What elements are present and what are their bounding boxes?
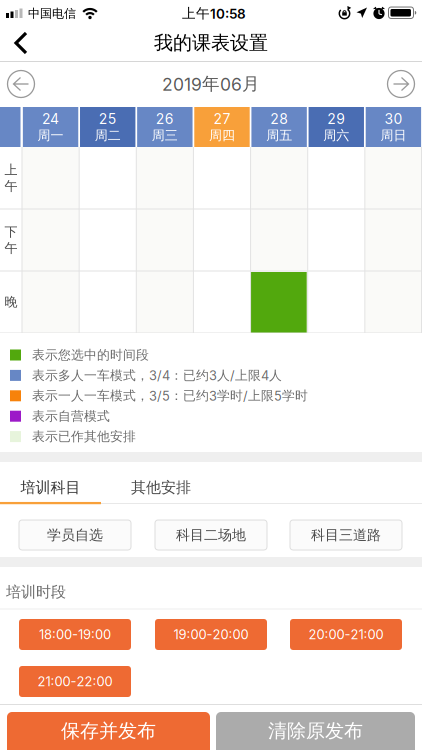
staticText: 18:00-19:00	[39, 627, 111, 642]
staticText: 28	[270, 110, 288, 127]
button[interactable]: 30	[366, 107, 421, 147]
staticText: 21:00-22:00	[37, 674, 112, 689]
button[interactable]: Previous month	[7, 70, 34, 97]
staticText: 27	[213, 110, 230, 127]
staticText: 上	[4, 162, 17, 178]
staticText: 表示多人一车模式，3/4：已约3人/上限4人	[32, 367, 282, 383]
button[interactable]: 18:00-19:00	[19, 619, 131, 650]
staticText: 培训科目	[20, 478, 80, 497]
staticText: 30	[384, 110, 402, 127]
staticText: 2019年06月	[162, 73, 260, 95]
staticText: 清除原发布	[268, 719, 363, 743]
staticText: 晚	[4, 294, 17, 310]
staticText: 科目三道路	[311, 526, 381, 544]
staticText: 周一	[38, 127, 64, 144]
staticText: 下	[4, 224, 17, 240]
staticText: 表示您选中的时间段	[32, 347, 149, 363]
staticText: 25	[99, 110, 117, 127]
staticText: 午	[4, 178, 17, 194]
staticText: 培训时段	[6, 583, 66, 601]
staticText: 中国电信	[28, 6, 76, 21]
staticText: 周二	[95, 127, 121, 144]
staticText: 保存并发布	[61, 719, 156, 743]
button[interactable]: Back	[13, 31, 28, 55]
staticText: 周日	[380, 127, 406, 144]
staticText: 19:00-20:00	[173, 627, 248, 642]
staticText: 午	[4, 240, 17, 256]
staticText: 上午10:58	[182, 5, 246, 22]
button[interactable]: 28	[251, 107, 307, 147]
button[interactable]: 25	[80, 107, 135, 147]
staticText: 26	[156, 110, 174, 127]
button[interactable]: 科目三道路	[290, 520, 402, 550]
button[interactable]: 26	[137, 107, 193, 147]
button[interactable]: 24	[23, 107, 78, 147]
staticText: 表示一人一车模式，3/5：已约3学时/上限5学时	[32, 388, 308, 404]
button[interactable]: Next month	[387, 70, 414, 97]
staticText: 表示已作其他安排	[32, 428, 136, 445]
button[interactable]: 29	[309, 107, 364, 147]
button[interactable]: Selected time slot: Friday evening	[250, 272, 307, 333]
button[interactable]: 培训科目	[0, 467, 101, 507]
button[interactable]: 21:00-22:00	[19, 666, 131, 697]
button[interactable]: 20:00-21:00	[290, 619, 402, 650]
staticText: 科目二场地	[176, 526, 246, 544]
staticText: 周五	[266, 127, 292, 144]
staticText: 20:00-21:00	[308, 627, 383, 642]
staticText: 学员自选	[47, 526, 103, 544]
button[interactable]: 学员自选	[19, 520, 131, 550]
staticText: 29	[327, 110, 345, 127]
staticText: 表示自营模式	[32, 408, 110, 424]
staticText: 周三	[152, 127, 178, 144]
staticText: 周四	[209, 127, 235, 144]
staticText: 我的课表设置	[154, 31, 268, 55]
button[interactable]: 19:00-20:00	[155, 619, 267, 650]
button[interactable]: 科目二场地	[155, 520, 267, 550]
button[interactable]: 其他安排	[110, 467, 211, 507]
button[interactable]: 27	[194, 107, 250, 147]
staticText: 周六	[323, 127, 349, 144]
button[interactable]: 清除原发布	[216, 712, 415, 750]
button[interactable]: 保存并发布	[7, 712, 210, 750]
staticText: 其他安排	[131, 478, 191, 497]
staticText: 24	[42, 110, 59, 127]
